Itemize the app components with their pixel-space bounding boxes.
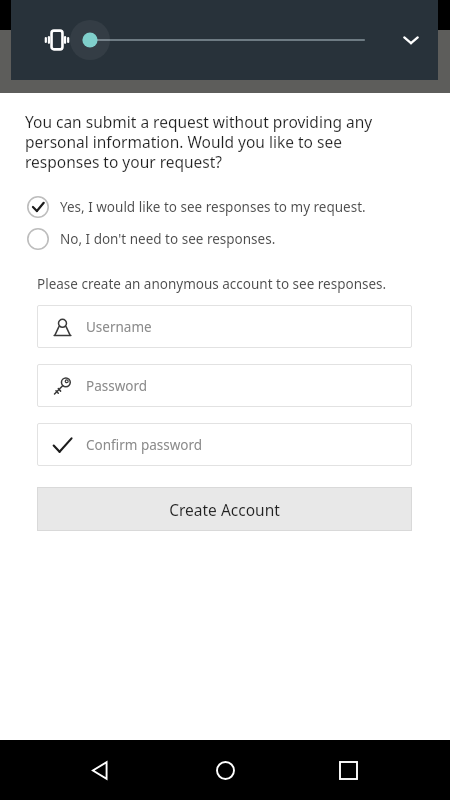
staticText: Yes, I would like to see responses to my… (60, 198, 366, 216)
button[interactable]: Create Account (37, 487, 412, 531)
button[interactable]: Confirm password (37, 423, 412, 466)
staticText: Confirm password (86, 436, 203, 454)
button[interactable]: Expand volume controls (393, 22, 429, 58)
button[interactable]: Back (78, 748, 122, 792)
button[interactable]: Ringer mode: vibrate (39, 22, 75, 58)
staticText: Password (86, 377, 148, 395)
button[interactable]: Home (203, 748, 247, 792)
staticText: Create Account (169, 499, 280, 520)
staticText: Please create an anonymous account to se… (37, 275, 387, 293)
button[interactable]: Username (37, 305, 412, 348)
button[interactable]: Volume (70, 20, 364, 60)
button[interactable]: Yes, I would like to see responses to my… (0, 191, 450, 223)
button[interactable]: Ringer mode: vibrate (11, 0, 438, 80)
staticText: Username (86, 318, 152, 336)
button[interactable]: No, I don't need to see responses. (0, 223, 450, 255)
staticText: You can submit a request without providi… (25, 111, 420, 173)
button[interactable]: Password (37, 364, 412, 407)
button[interactable]: Recent apps (326, 748, 370, 792)
staticText: No, I don't need to see responses. (60, 230, 276, 248)
